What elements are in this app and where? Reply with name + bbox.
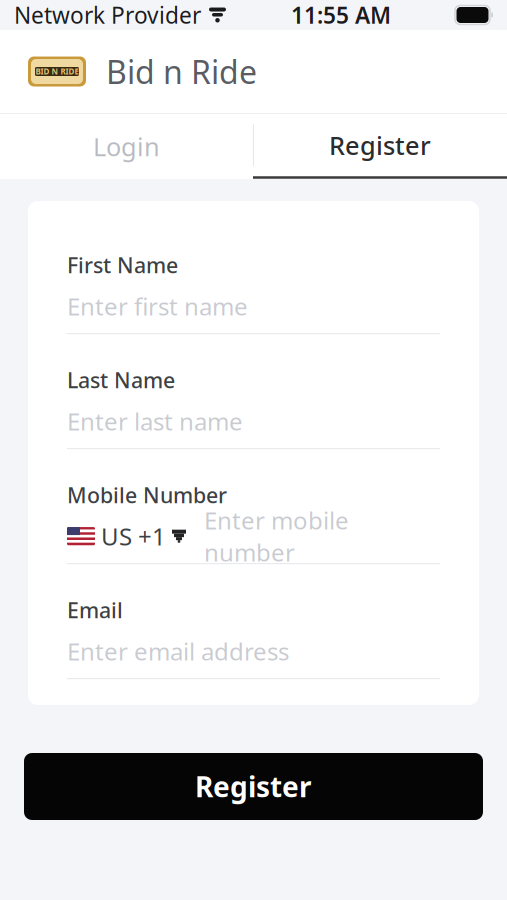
button[interactable]: US +1 <box>67 522 186 550</box>
staticText: Enter first name <box>67 290 248 322</box>
staticText: BID N RIDE <box>35 66 78 77</box>
staticText: First Name <box>67 251 178 279</box>
button[interactable]: Enter email address <box>67 637 440 679</box>
button[interactable]: Enter last name <box>67 407 440 449</box>
staticText: 11:55 AM <box>291 0 391 30</box>
button[interactable]: Register <box>253 114 507 179</box>
staticText: Email <box>67 596 123 624</box>
button[interactable]: Enter mobile number <box>204 522 440 550</box>
staticText: Enter last name <box>67 405 243 437</box>
staticText: Bid n Ride <box>106 50 257 93</box>
button[interactable]: Register <box>24 753 483 820</box>
button[interactable]: Enter first name <box>67 292 440 334</box>
staticText: Last Name <box>67 366 175 394</box>
staticText: Register <box>195 768 312 805</box>
staticText: Enter email address <box>67 635 289 667</box>
staticText: US +1 <box>101 520 166 552</box>
button[interactable]: Login <box>0 114 253 178</box>
staticText: Enter mobile number <box>204 504 349 568</box>
staticText: Network Provider <box>14 0 201 30</box>
staticText: Mobile Number <box>67 481 227 509</box>
staticText: Login <box>93 130 160 163</box>
staticText: Register <box>329 128 431 162</box>
